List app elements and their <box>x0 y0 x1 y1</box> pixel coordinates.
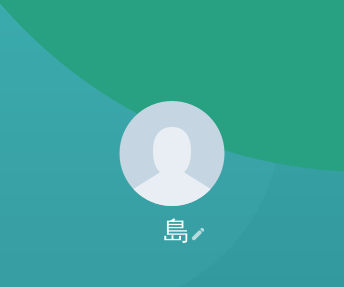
staticText: 島 <box>163 215 190 247</box>
button[interactable]: 島 <box>0 0 344 287</box>
